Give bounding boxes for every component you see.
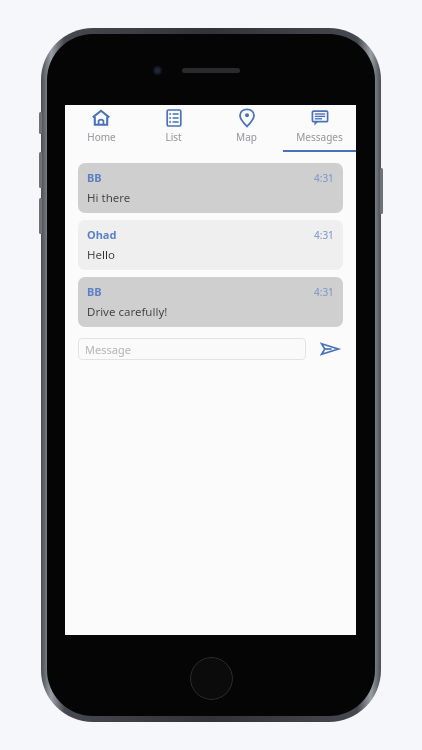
staticText: List (165, 130, 182, 144)
staticText: Ohad (87, 227, 117, 242)
button[interactable]: Map (210, 105, 283, 152)
staticText: Message (85, 342, 131, 357)
other: Home button (190, 657, 233, 700)
staticText: BB (87, 170, 102, 185)
staticText: 4:31 (314, 228, 334, 242)
staticText: Home (87, 130, 116, 144)
staticText: 4:31 (314, 285, 334, 299)
button[interactable]: Messages (283, 105, 356, 152)
staticText: Map (236, 130, 257, 144)
button[interactable]: Send (317, 337, 343, 361)
button[interactable]: Message (78, 338, 306, 360)
staticText: 4:31 (314, 171, 334, 185)
button[interactable]: Home (65, 105, 137, 152)
staticText: Drive carefully! (87, 304, 168, 320)
staticText: Messages (296, 130, 343, 144)
button[interactable]: Ohad (78, 220, 343, 270)
button[interactable]: BB (78, 277, 343, 327)
staticText: Hello (87, 247, 115, 263)
staticText: BB (87, 284, 102, 299)
button[interactable]: BB (78, 163, 343, 213)
staticText: Hi there (87, 190, 131, 206)
button[interactable]: List (137, 105, 210, 152)
